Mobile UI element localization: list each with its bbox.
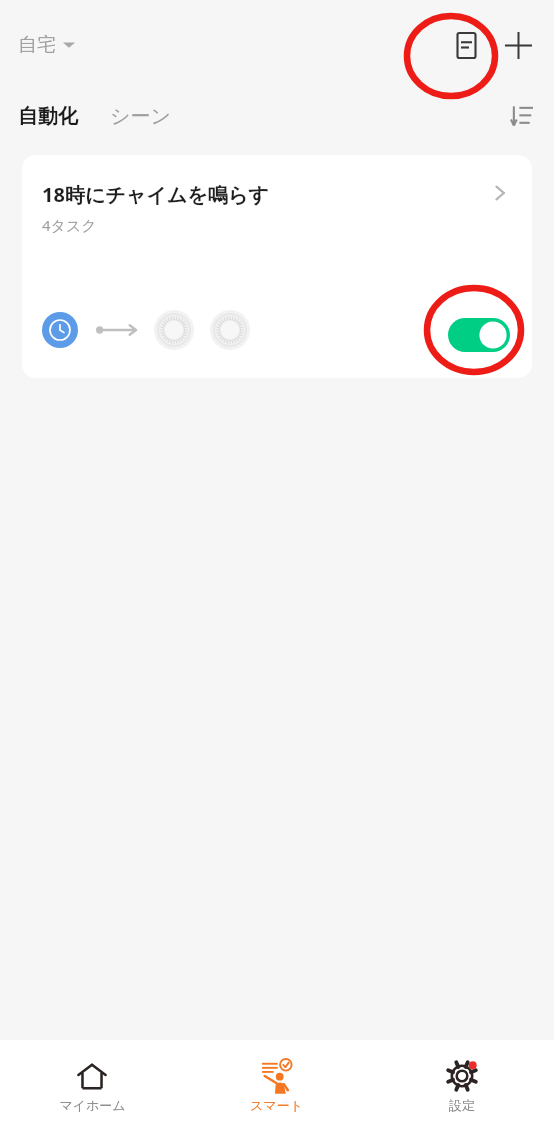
button[interactable]: Open automation — [478, 171, 522, 215]
button[interactable]: Add — [492, 19, 544, 71]
button[interactable]: Enable automation — [442, 312, 516, 358]
button[interactable]: 18時にチャイムを鳴らす — [22, 155, 532, 378]
button[interactable]: 自動化 — [10, 98, 86, 135]
button[interactable]: Logs — [440, 19, 492, 71]
staticText: シーン — [110, 104, 171, 129]
staticText: 設定 — [449, 1097, 475, 1113]
button[interactable]: 設定 — [369, 1050, 554, 1121]
button[interactable]: Sort — [500, 94, 544, 138]
button[interactable]: スマート — [184, 1050, 369, 1121]
staticText: マイホーム — [59, 1097, 126, 1113]
button[interactable]: マイホーム — [0, 1050, 184, 1121]
staticText: 18時にチャイムを鳴らす — [42, 181, 269, 208]
staticText: スマート — [250, 1097, 303, 1113]
button[interactable]: シーン — [102, 98, 179, 135]
staticText: 自動化 — [18, 104, 78, 129]
staticText: 自宅 — [18, 33, 56, 57]
staticText: 4タスク — [42, 215, 97, 235]
button[interactable]: 自宅 — [14, 27, 79, 63]
